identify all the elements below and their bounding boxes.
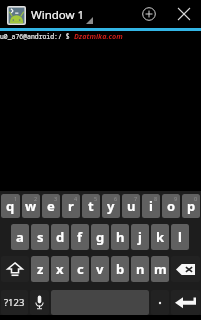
button[interactable]: a [11, 224, 29, 250]
staticText: d [56, 228, 65, 246]
button[interactable]: e [42, 194, 60, 218]
button[interactable]: k [151, 224, 169, 250]
button[interactable]: x [51, 256, 69, 282]
staticText: 3 [54, 195, 58, 202]
staticText: b [116, 260, 125, 278]
button[interactable]: t [82, 194, 100, 218]
button[interactable]: v [91, 256, 109, 282]
staticText: i [149, 197, 153, 215]
button[interactable]: Enter [171, 290, 200, 315]
button[interactable]: h [111, 224, 129, 250]
staticText: r [68, 197, 74, 215]
staticText: Dzatmika.com [74, 31, 123, 41]
staticText: n [136, 260, 145, 278]
staticText: y [107, 197, 115, 215]
staticText: 9 [174, 195, 178, 202]
staticText: a [16, 228, 24, 246]
button[interactable]: l [171, 224, 189, 250]
button[interactable]: Close window [170, 0, 198, 28]
staticText: 1 [14, 195, 18, 202]
button[interactable]: Period [151, 290, 169, 315]
staticText: 0 [194, 195, 198, 202]
staticText: j [138, 228, 142, 246]
button[interactable]: c [71, 256, 89, 282]
staticText: m [154, 260, 167, 278]
staticText: h [116, 228, 125, 246]
staticText: s [37, 228, 44, 246]
button[interactable]: z [31, 256, 49, 282]
staticText: k [156, 228, 165, 246]
staticText: 6 [114, 195, 118, 202]
staticText: 7 [134, 195, 138, 202]
staticText: 4 [74, 195, 78, 202]
staticText: ?123 [4, 296, 25, 309]
button[interactable]: Shift [1, 256, 29, 282]
button[interactable]: p [182, 194, 200, 218]
staticText: 8 [154, 195, 158, 202]
staticText: e [47, 197, 55, 215]
button[interactable]: u [122, 194, 140, 218]
button[interactable]: Voice input [30, 290, 49, 315]
staticText: u [127, 197, 136, 215]
staticText: g [96, 228, 105, 246]
button[interactable]: New window [135, 0, 163, 28]
button[interactable]: g [91, 224, 109, 250]
staticText: Window 1 [31, 7, 85, 23]
button[interactable]: w [22, 194, 40, 218]
button[interactable]: y [102, 194, 120, 218]
button[interactable]: j [131, 224, 149, 250]
button[interactable]: f [71, 224, 89, 250]
button[interactable]: n [131, 256, 149, 282]
staticText: o [167, 197, 176, 215]
button[interactable]: s [31, 224, 49, 250]
staticText: u0_a76@android:/ $ [0, 32, 74, 41]
staticText: p [187, 197, 196, 215]
staticText: c [77, 260, 84, 278]
staticText: x [56, 260, 64, 278]
button[interactable]: d [51, 224, 69, 250]
button[interactable]: Window 1 [0, 0, 98, 28]
button[interactable]: ?123 [1, 290, 28, 315]
button[interactable]: m [151, 256, 169, 282]
staticText: z [37, 260, 44, 278]
staticText: l [178, 228, 182, 246]
button[interactable]: i [142, 194, 160, 218]
button[interactable]: q [1, 194, 20, 218]
button[interactable]: o [162, 194, 180, 218]
staticText: 5 [94, 195, 98, 202]
button[interactable]: r [62, 194, 80, 218]
staticText: 2 [34, 195, 38, 202]
button[interactable]: Backspace [171, 256, 200, 282]
staticText: f [77, 228, 83, 246]
staticText: v [96, 260, 104, 278]
button[interactable]: b [111, 256, 129, 282]
staticText: w [25, 197, 37, 215]
staticText: t [88, 197, 94, 215]
staticText: q [6, 197, 15, 215]
